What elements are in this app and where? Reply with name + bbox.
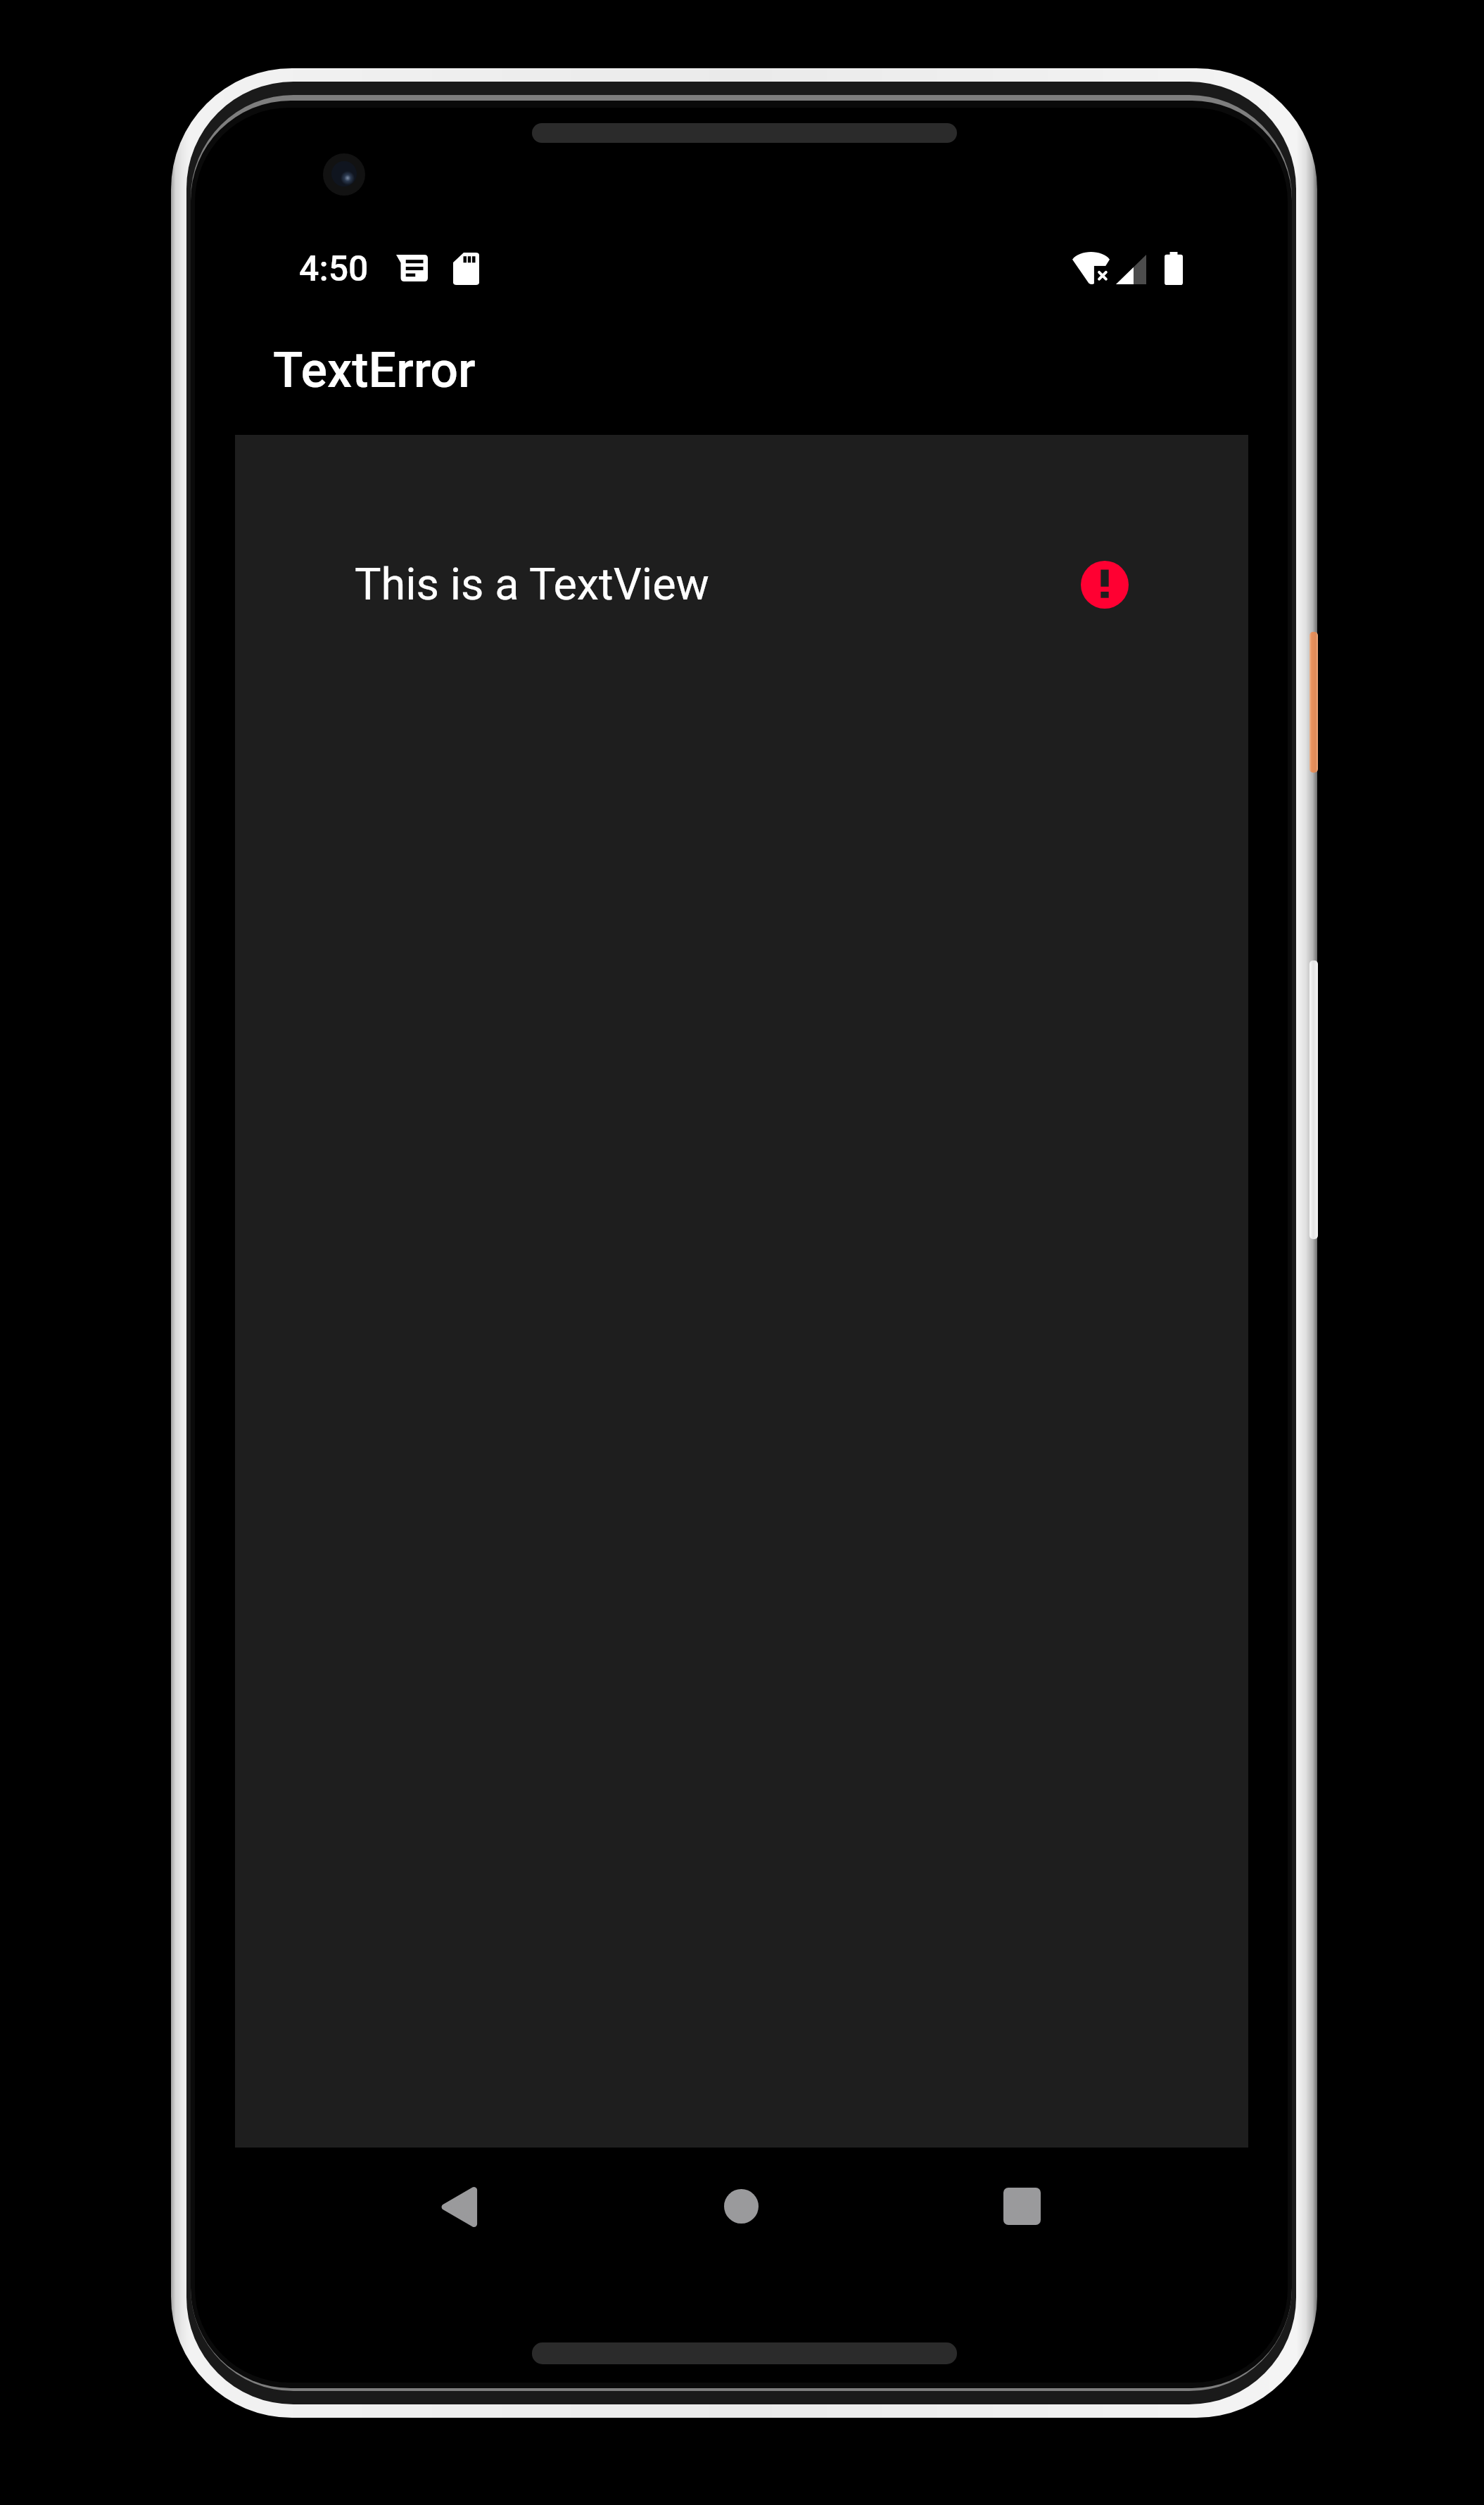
button[interactable]: Home — [683, 2160, 799, 2252]
button[interactable]: Error — [1081, 561, 1129, 609]
staticText: 4:50 — [299, 248, 369, 290]
button[interactable]: Back — [401, 2161, 516, 2252]
staticText: This is a TextView — [355, 559, 709, 611]
staticText: TextError — [273, 341, 476, 399]
button[interactable]: Recent apps — [964, 2160, 1079, 2252]
